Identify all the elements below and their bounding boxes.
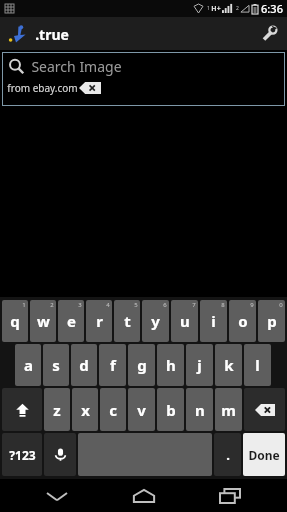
staticText: i	[211, 311, 216, 331]
staticText: H+	[211, 4, 221, 14]
staticText: k	[224, 355, 234, 375]
staticText: p	[267, 311, 277, 331]
staticText: .	[226, 446, 230, 464]
staticText: f	[110, 355, 116, 375]
staticText: d	[79, 355, 89, 375]
staticText: 4	[106, 301, 110, 309]
button[interactable]: Search Image	[2, 52, 285, 106]
staticText: 9	[250, 301, 254, 309]
button[interactable]: a	[15, 344, 41, 386]
button[interactable]: Home	[114, 479, 174, 512]
staticText: 3	[78, 301, 82, 309]
staticText: j	[197, 355, 202, 375]
staticText: .true	[35, 25, 69, 44]
button[interactable]: Hide keyboard	[27, 479, 87, 512]
staticText: q	[10, 311, 20, 331]
staticText: 1	[207, 5, 210, 12]
staticText: z	[53, 400, 61, 420]
staticText: 2	[50, 301, 54, 309]
button[interactable]: i	[200, 300, 227, 342]
staticText: 7	[192, 301, 196, 309]
button[interactable]: l	[244, 344, 271, 386]
button[interactable]: j	[186, 344, 213, 386]
button[interactable]: g	[128, 344, 155, 386]
button[interactable]: t	[114, 300, 140, 342]
staticText: Done	[248, 447, 280, 463]
staticText: l	[255, 355, 260, 375]
button[interactable]: h	[157, 344, 184, 386]
button[interactable]: Voice input	[44, 433, 76, 476]
staticText: h	[166, 355, 176, 375]
staticText: c	[109, 400, 117, 420]
staticText: 5	[134, 301, 138, 309]
staticText: 6:36	[261, 1, 283, 16]
button[interactable]: k	[215, 344, 242, 386]
button[interactable]: Backspace	[244, 388, 285, 431]
button[interactable]: n	[186, 388, 213, 431]
button[interactable]: u	[171, 300, 198, 342]
staticText: a	[24, 355, 33, 375]
button[interactable]: Shift	[2, 388, 42, 431]
staticText: t	[124, 311, 131, 331]
staticText: 1	[22, 301, 26, 309]
button[interactable]: o	[229, 300, 256, 342]
button[interactable]: y	[142, 300, 169, 342]
staticText: 6	[163, 301, 167, 309]
staticText: ?123	[9, 447, 36, 463]
button[interactable]: .	[214, 433, 241, 476]
button[interactable]: s	[43, 344, 69, 386]
staticText: 2	[236, 5, 239, 12]
staticText: v	[137, 400, 146, 420]
staticText: 8	[221, 301, 225, 309]
button[interactable]: Done	[243, 433, 285, 476]
button[interactable]: e	[58, 300, 84, 342]
button[interactable]: x	[72, 388, 98, 431]
staticText: u	[180, 311, 190, 331]
button[interactable]: b	[157, 388, 184, 431]
button[interactable]: z	[44, 388, 70, 431]
button[interactable]: d	[71, 344, 97, 386]
staticText: m	[221, 400, 236, 420]
staticText: s	[52, 355, 60, 375]
staticText: y	[151, 311, 160, 331]
button[interactable]: q	[2, 300, 28, 342]
button[interactable]: ?123	[2, 433, 42, 476]
button[interactable]: Recent apps	[200, 479, 260, 512]
button[interactable]: c	[100, 388, 126, 431]
staticText: 0	[279, 301, 283, 309]
button[interactable]: w	[30, 300, 56, 342]
button[interactable]: v	[128, 388, 155, 431]
staticText: n	[195, 400, 205, 420]
button[interactable]: p	[258, 300, 285, 342]
button[interactable]: m	[215, 388, 242, 431]
button[interactable]: Settings	[251, 17, 287, 50]
staticText: r	[96, 311, 103, 331]
staticText: from ebay.com	[7, 81, 78, 95]
staticText: x	[81, 400, 90, 420]
staticText: g	[137, 355, 147, 375]
staticText: w	[37, 311, 50, 331]
button[interactable]: f	[99, 344, 126, 386]
staticText: e	[67, 311, 76, 331]
button[interactable]: r	[86, 300, 112, 342]
staticText: o	[238, 311, 248, 331]
staticText: Search Image	[31, 57, 122, 76]
button[interactable]: Clear source	[79, 82, 101, 94]
staticText: b	[166, 400, 176, 420]
